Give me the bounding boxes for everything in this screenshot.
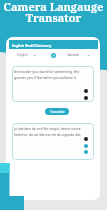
- button[interactable]: Swap languages: [51, 53, 56, 58]
- button[interactable]: Share: [84, 144, 88, 148]
- button[interactable]: English: [17, 50, 37, 60]
- button[interactable]: Copy: [84, 150, 88, 154]
- button[interactable]: Microphone: [84, 89, 88, 93]
- staticText: Swedish: [67, 53, 80, 57]
- staticText: English: [17, 53, 28, 57]
- button[interactable]: Swedish: [67, 50, 91, 60]
- staticText: ju hårdare du ord för något, desto störr…: [14, 126, 84, 137]
- staticText: Translate: [50, 109, 65, 114]
- button[interactable]: Clear text: [84, 96, 88, 100]
- staticText: Camera Langauge Transator: [0, 0, 107, 26]
- button[interactable]: Translate: [45, 108, 69, 115]
- button[interactable]: English Hindi Dictionary: [9, 40, 98, 49]
- staticText: English Hindi Dictionary: [12, 43, 52, 47]
- button[interactable]: Speak: [84, 137, 88, 141]
- staticText: the harder you word for something, the g…: [14, 69, 84, 80]
